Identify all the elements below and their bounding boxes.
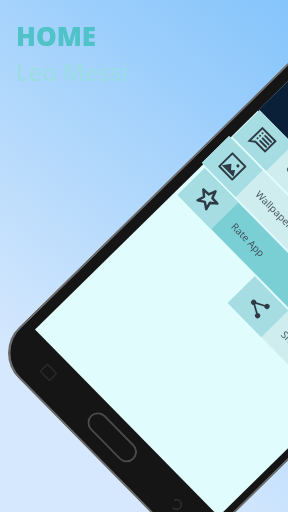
staticText: Wallpaper xyxy=(253,187,288,231)
button[interactable]: Back xyxy=(167,494,187,512)
button[interactable]: Chat xyxy=(233,110,288,290)
button[interactable]: Share xyxy=(228,276,288,412)
staticText: Leo Messi xyxy=(16,55,128,88)
staticText: HOME xyxy=(16,18,97,53)
button[interactable]: Home xyxy=(83,408,141,467)
button[interactable]: Recents xyxy=(40,364,57,381)
staticText: Rate App xyxy=(228,219,268,260)
button[interactable]: Rate App xyxy=(178,168,288,348)
staticText: Chat xyxy=(283,161,288,187)
staticText: Share xyxy=(278,327,288,357)
button[interactable]: Wallpaper xyxy=(202,136,288,316)
